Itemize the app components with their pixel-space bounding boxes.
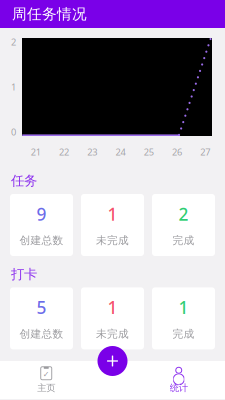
staticText: 完成 <box>172 327 194 340</box>
staticText: 2 <box>11 36 16 48</box>
staticText: 未完成 <box>96 327 129 340</box>
staticText: 2 <box>178 202 188 225</box>
staticText: 1 <box>107 202 117 225</box>
staticText: 创建总数 <box>19 327 63 340</box>
staticText: 27 <box>200 146 210 158</box>
staticText: 23 <box>87 146 97 158</box>
staticText: 25 <box>144 146 154 158</box>
button[interactable]: 1 <box>152 287 215 349</box>
staticText: 24 <box>115 146 125 158</box>
staticText: 1 <box>178 296 188 319</box>
staticText: ✓ <box>43 370 50 379</box>
staticText: 1 <box>107 296 117 319</box>
staticText: 21 <box>31 146 41 158</box>
button[interactable]: Add <box>97 346 127 376</box>
button[interactable]: 9 <box>10 194 73 256</box>
button[interactable]: 5 <box>10 287 73 349</box>
staticText: 周任务情况 <box>12 5 87 23</box>
staticText: 任务 <box>11 173 37 189</box>
button[interactable]: ✓ <box>0 361 92 399</box>
button[interactable]: 1 <box>81 287 144 349</box>
button[interactable]: 1 <box>81 194 144 256</box>
button[interactable]: 统计 <box>132 361 225 399</box>
staticText: 22 <box>59 146 69 158</box>
staticText: 0 <box>11 126 16 138</box>
staticText: 完成 <box>172 234 194 247</box>
staticText: 5 <box>36 296 46 319</box>
button[interactable]: 2 <box>152 194 215 256</box>
staticText: 主页 <box>37 382 55 394</box>
staticText: 9 <box>36 202 46 225</box>
staticText: 创建总数 <box>19 234 63 247</box>
staticText: 26 <box>172 146 182 158</box>
staticText: 未完成 <box>96 234 129 247</box>
staticText: 1 <box>11 81 16 93</box>
staticText: 打卡 <box>11 266 37 282</box>
staticText: 统计 <box>170 382 188 394</box>
